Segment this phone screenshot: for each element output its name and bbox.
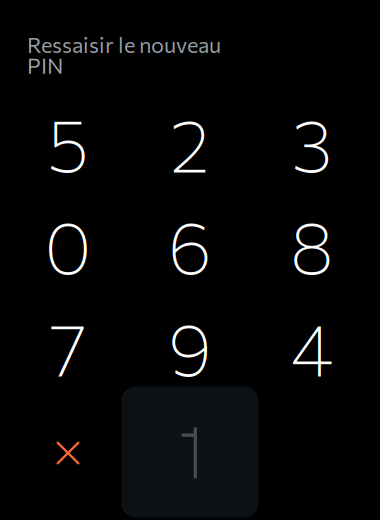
button[interactable]: 0	[7, 194, 129, 296]
staticText: PIN	[27, 52, 63, 78]
staticText: 0	[44, 201, 91, 290]
staticText: 2	[170, 99, 210, 188]
staticText: 5	[47, 99, 88, 188]
staticText: 7	[49, 303, 86, 392]
button[interactable]: 6	[129, 194, 251, 296]
button[interactable]: 3	[251, 92, 373, 194]
staticText: 6	[168, 201, 212, 290]
button[interactable]: 9	[129, 296, 251, 398]
button[interactable]: 7	[7, 296, 129, 398]
button[interactable]: Delete	[7, 402, 129, 504]
button[interactable]: 5	[7, 92, 129, 194]
button[interactable]: 2	[129, 92, 251, 194]
button[interactable]: 4	[251, 296, 373, 398]
staticText: 9	[168, 303, 212, 392]
staticText: 8	[290, 201, 334, 290]
staticText: 3	[291, 99, 332, 188]
button[interactable]: 8	[251, 194, 373, 296]
staticText: Ressaisir le nouveau	[27, 31, 221, 58]
button[interactable]	[121, 386, 258, 517]
staticText: 4	[290, 303, 333, 392]
